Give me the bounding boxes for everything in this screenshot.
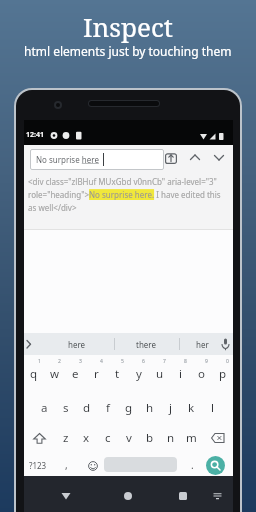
staticText: p: [219, 366, 227, 382]
button[interactable]: her: [186, 333, 218, 355]
staticText: .: [191, 458, 194, 472]
button[interactable]: ?123: [24, 455, 52, 475]
button[interactable]: u: [149, 364, 170, 384]
button[interactable]: [190, 154, 200, 162]
button[interactable]: [124, 492, 132, 500]
staticText: here: [68, 339, 86, 350]
button[interactable]: [61, 493, 71, 500]
button[interactable]: m: [181, 428, 202, 448]
button[interactable]: a: [34, 398, 55, 418]
staticText: a: [41, 400, 48, 416]
button[interactable]: v: [118, 428, 139, 448]
staticText: h: [146, 400, 154, 416]
button[interactable]: l: [202, 398, 223, 418]
staticText: her: [196, 339, 209, 350]
button[interactable]: there: [128, 333, 164, 355]
button[interactable]: r: [86, 364, 107, 384]
staticText: f: [106, 400, 110, 416]
staticText: j: [169, 400, 172, 416]
staticText: u: [156, 366, 164, 382]
button[interactable]: p: [212, 364, 233, 384]
button[interactable]: f: [97, 398, 118, 418]
button[interactable]: e: [65, 364, 86, 384]
button[interactable]: s: [55, 398, 76, 418]
staticText: role="heading">No surprise here. I have …: [28, 189, 221, 200]
staticText: g: [125, 400, 133, 416]
staticText: s: [63, 400, 69, 416]
button[interactable]: w: [44, 364, 65, 384]
staticText: 2: [58, 358, 61, 365]
button[interactable]: ,: [58, 455, 74, 475]
button[interactable]: z: [55, 428, 76, 448]
button[interactable]: [202, 428, 233, 448]
button[interactable]: b: [139, 428, 160, 448]
button[interactable]: q: [24, 364, 44, 384]
staticText: 12:41: [26, 130, 44, 140]
staticText: o: [198, 366, 205, 382]
staticText: 9: [205, 358, 208, 365]
staticText: v: [126, 430, 132, 446]
staticText: x: [83, 430, 90, 446]
button[interactable]: .: [184, 455, 200, 475]
button[interactable]: t: [107, 364, 128, 384]
staticText: t: [115, 366, 120, 382]
button[interactable]: [26, 340, 32, 349]
staticText: b: [146, 430, 154, 446]
staticText: 7: [163, 358, 166, 365]
staticText: as well</div>: [28, 202, 77, 213]
button[interactable]: [165, 152, 177, 164]
button[interactable]: [213, 493, 222, 500]
staticText: No surprise here: [36, 154, 99, 165]
button[interactable]: o: [191, 364, 212, 384]
button[interactable]: c: [97, 428, 118, 448]
button[interactable]: [24, 428, 55, 448]
staticText: k: [188, 400, 195, 416]
button[interactable]: n: [160, 428, 181, 448]
button[interactable]: d: [76, 398, 97, 418]
button[interactable]: [88, 461, 98, 471]
staticText: z: [63, 430, 69, 446]
staticText: ?123: [29, 460, 47, 471]
button[interactable]: No surprise here: [30, 149, 164, 170]
button[interactable]: [179, 492, 187, 500]
button[interactable]: [214, 154, 224, 162]
staticText: l: [211, 400, 214, 416]
staticText: c: [105, 430, 111, 446]
staticText: html elements just by touching them: [24, 43, 232, 59]
button[interactable]: h: [139, 398, 160, 418]
button[interactable]: g: [118, 398, 139, 418]
staticText: r: [94, 366, 99, 382]
button[interactable]: k: [181, 398, 202, 418]
staticText: e: [72, 366, 79, 382]
button[interactable]: y: [128, 364, 149, 384]
button[interactable]: j: [160, 398, 181, 418]
staticText: 5: [121, 358, 124, 365]
staticText: 4: [100, 358, 103, 365]
staticText: Inspect: [83, 9, 173, 44]
button[interactable]: here: [61, 333, 93, 355]
button[interactable]: x: [76, 428, 97, 448]
button[interactable]: [221, 338, 230, 351]
staticText: ,: [65, 458, 68, 472]
button[interactable]: i: [170, 364, 191, 384]
staticText: y: [136, 366, 142, 382]
staticText: 3: [79, 358, 82, 365]
staticText: m: [186, 430, 197, 446]
staticText: n: [167, 430, 175, 446]
staticText: 6: [142, 358, 145, 365]
staticText: w: [50, 366, 60, 382]
staticText: q: [30, 366, 38, 382]
staticText: 8: [184, 358, 187, 365]
staticText: d: [83, 400, 91, 416]
button[interactable]: [206, 456, 225, 475]
staticText: i: [179, 366, 182, 382]
staticText: <div class="zlBHuf MUxGbd v0nnCb" aria-l…: [28, 176, 217, 187]
staticText: 0: [226, 358, 229, 365]
staticText: 1: [38, 358, 41, 365]
staticText: there: [136, 339, 156, 350]
